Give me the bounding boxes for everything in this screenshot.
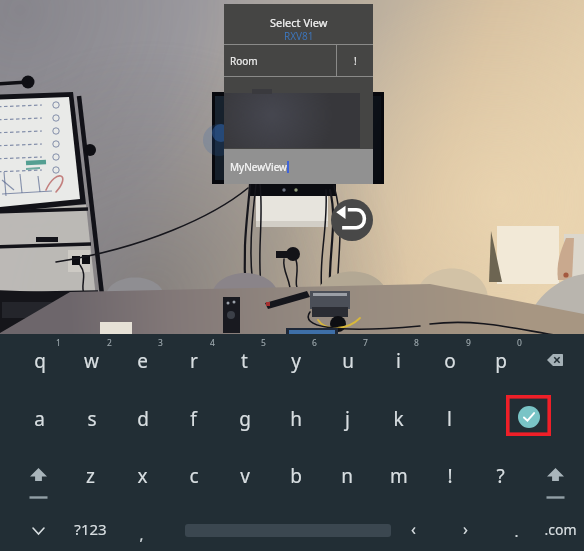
button[interactable]: w — [66, 337, 117, 385]
button[interactable]: Hide keyboard — [21, 518, 55, 544]
staticText: q — [34, 348, 46, 374]
staticText: m — [390, 463, 408, 489]
staticText: k — [393, 406, 404, 432]
button[interactable]: v — [219, 452, 270, 500]
staticText: , — [139, 524, 144, 544]
button[interactable]: a — [14, 395, 65, 443]
staticText: ? — [496, 463, 505, 489]
staticText: e — [137, 348, 148, 374]
button[interactable]: d — [117, 395, 168, 443]
button[interactable]: Enter — [506, 395, 551, 436]
button[interactable]: . — [491, 507, 542, 551]
staticText: 5 — [261, 337, 266, 349]
staticText: p — [495, 348, 507, 374]
button[interactable]: MyNewView — [224, 149, 373, 184]
button[interactable]: More options — [337, 45, 373, 76]
staticText: 6 — [312, 337, 317, 349]
staticText: 7 — [363, 337, 368, 349]
staticText: › — [463, 518, 468, 540]
button[interactable]: n — [321, 452, 372, 500]
staticText: 4 — [210, 337, 215, 349]
staticText: 3 — [158, 337, 163, 349]
staticText: . — [514, 521, 519, 541]
button[interactable]: Shift — [530, 459, 581, 507]
button[interactable]: ?123 — [65, 505, 116, 551]
staticText: v — [240, 463, 250, 489]
staticText: l — [447, 406, 452, 432]
staticText: w — [84, 348, 99, 374]
button[interactable]: ! — [424, 452, 475, 500]
staticText: RXV81 — [284, 29, 314, 43]
staticText: y — [291, 348, 301, 374]
button[interactable]: k — [373, 395, 424, 443]
staticText: a — [34, 406, 45, 432]
button[interactable]: p — [475, 337, 526, 385]
button[interactable]: z — [65, 452, 116, 500]
button[interactable]: u — [322, 337, 373, 385]
staticText: 1 — [56, 337, 61, 349]
button[interactable]: .com — [535, 505, 584, 551]
staticText: t — [241, 348, 248, 374]
button[interactable]: y — [270, 337, 321, 385]
button[interactable]: t — [219, 337, 270, 385]
staticText: r — [190, 348, 198, 374]
button[interactable]: Backspace — [535, 348, 575, 372]
button[interactable]: ‹ — [388, 505, 439, 551]
button[interactable]: x — [117, 452, 168, 500]
button[interactable]: c — [168, 452, 219, 500]
staticText: 8 — [414, 337, 419, 349]
button[interactable]: Shift — [13, 459, 64, 507]
staticText: o — [444, 348, 456, 374]
staticText: g — [239, 406, 251, 432]
staticText: ! — [447, 463, 453, 489]
staticText: f — [190, 406, 197, 432]
button[interactable]: q — [14, 337, 65, 385]
staticText: 0 — [517, 337, 522, 349]
staticText: .com — [544, 520, 577, 539]
staticText: x — [137, 463, 148, 489]
button[interactable]: , — [116, 510, 167, 551]
staticText: ?123 — [74, 519, 107, 539]
staticText: u — [342, 348, 354, 374]
button[interactable]: f — [168, 395, 219, 443]
staticText: Select View — [270, 15, 328, 30]
staticText: c — [189, 463, 199, 489]
button[interactable]: j — [322, 395, 373, 443]
staticText: j — [345, 406, 350, 432]
staticText: Room — [230, 54, 258, 68]
staticText: i — [396, 348, 401, 374]
staticText: z — [86, 463, 95, 489]
button[interactable]: g — [219, 395, 270, 443]
button[interactable]: m — [373, 452, 424, 500]
staticText: ‹ — [411, 518, 416, 540]
staticText: d — [137, 406, 149, 432]
staticText: ! — [354, 54, 357, 68]
button[interactable]: e — [117, 337, 168, 385]
button[interactable]: Room — [224, 45, 336, 76]
button[interactable]: l — [424, 395, 475, 443]
button[interactable]: › — [440, 505, 491, 551]
staticText: b — [290, 463, 302, 489]
button[interactable]: i — [373, 337, 424, 385]
button[interactable]: s — [66, 395, 117, 443]
button[interactable]: b — [270, 452, 321, 500]
button[interactable]: r — [168, 337, 219, 385]
button[interactable]: Undo — [331, 199, 373, 241]
staticText: MyNewView — [230, 160, 287, 174]
staticText: n — [341, 463, 353, 489]
button[interactable]: h — [270, 395, 321, 443]
button[interactable]: o — [424, 337, 475, 385]
staticText: s — [87, 406, 97, 432]
staticText: 2 — [107, 337, 112, 349]
button[interactable]: ? — [475, 452, 526, 500]
staticText: 9 — [466, 337, 471, 349]
staticText: h — [290, 406, 302, 432]
